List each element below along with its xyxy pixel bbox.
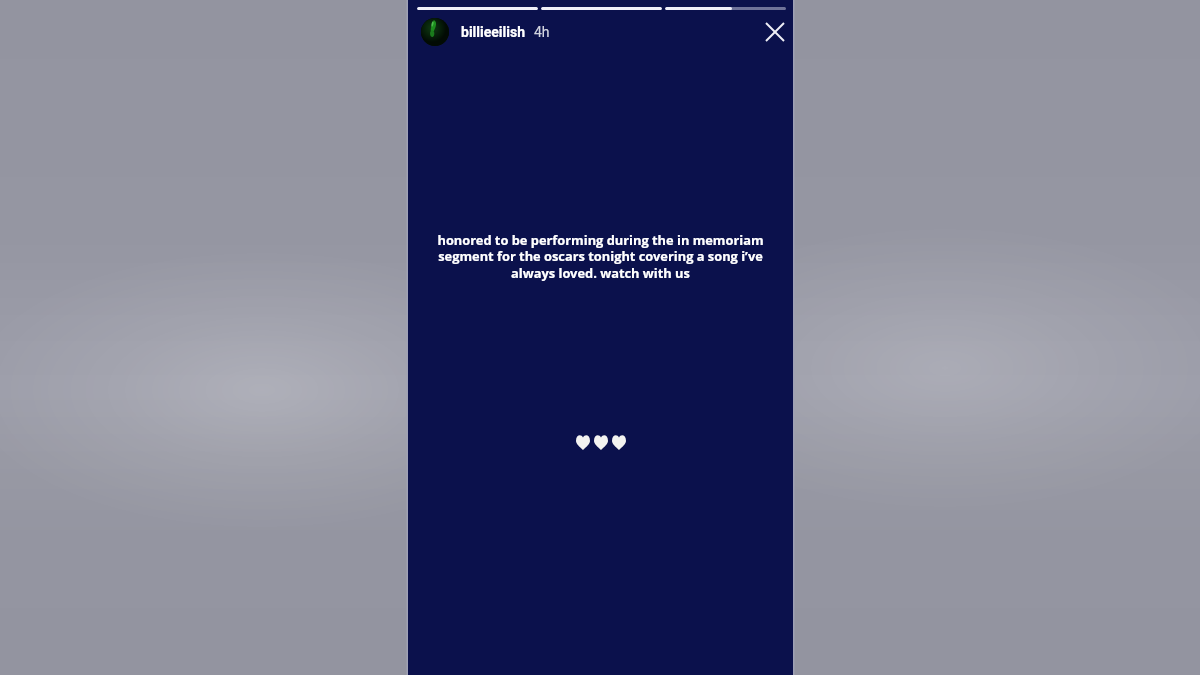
staticText: 4h [534,24,550,40]
staticText: billieeilish [461,24,526,40]
button[interactable] [665,7,786,10]
button[interactable] [417,7,538,10]
button[interactable] [541,7,662,10]
button[interactable]: billieeilish, 4h [421,18,550,46]
button[interactable]: Close story [760,17,790,47]
button[interactable]: honored to be performing during the in m… [408,231,793,282]
button[interactable]: Three white hearts [576,434,626,450]
staticText: honored to be performing during the in m… [430,231,771,282]
